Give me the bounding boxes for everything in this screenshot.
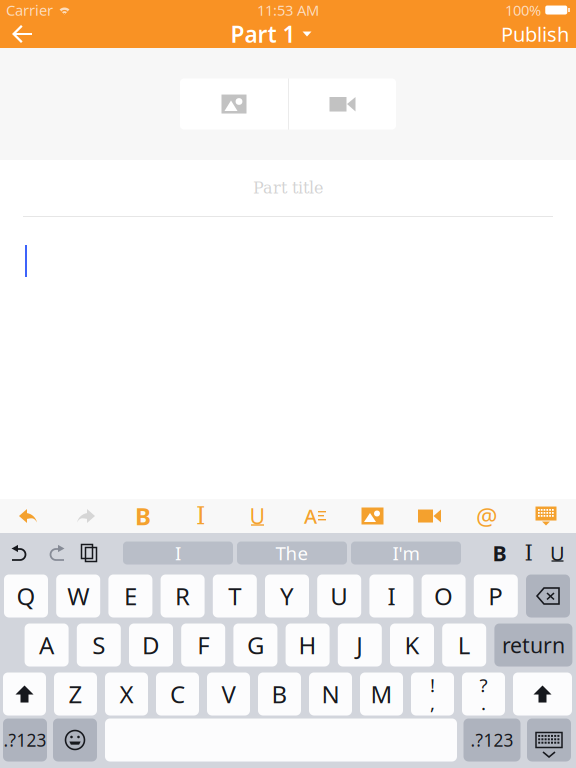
button[interactable]: X <box>105 672 148 715</box>
button[interactable]: H <box>286 623 330 666</box>
button[interactable]: A <box>25 623 69 666</box>
staticText: .?123 <box>470 728 513 751</box>
button[interactable]: Publish <box>498 20 572 48</box>
staticText: Z <box>68 678 82 710</box>
staticText: U <box>330 580 348 612</box>
button[interactable]: I <box>514 540 543 566</box>
staticText: Part 1 <box>230 19 295 49</box>
button[interactable]: Add video <box>289 78 396 129</box>
button[interactable]: V <box>207 672 250 715</box>
button[interactable]: U <box>543 540 572 566</box>
staticText: I <box>524 541 532 565</box>
staticText: 100% <box>505 0 541 20</box>
button[interactable]: Space <box>105 718 457 761</box>
staticText: U <box>550 540 565 566</box>
button[interactable]: J <box>338 623 382 666</box>
staticText: U <box>249 502 265 530</box>
button[interactable]: L <box>442 623 486 666</box>
staticText: M <box>370 678 392 710</box>
button[interactable]: I <box>123 541 233 564</box>
staticText: L <box>458 629 471 661</box>
button[interactable]: Undo <box>0 499 57 532</box>
button[interactable]: Redo <box>57 499 114 532</box>
button[interactable]: B <box>114 499 172 532</box>
button[interactable]: Part 1 <box>230 20 311 48</box>
button[interactable]: Y <box>265 574 309 617</box>
button[interactable]: M <box>360 672 403 715</box>
button[interactable]: U <box>317 574 361 617</box>
staticText: O <box>434 580 453 612</box>
button[interactable]: T <box>213 574 257 617</box>
staticText: J <box>356 629 363 661</box>
button[interactable]: Undo <box>4 540 38 566</box>
button[interactable]: U <box>229 499 286 532</box>
button[interactable]: ! <box>411 672 454 715</box>
button[interactable]: C <box>156 672 199 715</box>
staticText: H <box>299 629 317 661</box>
button[interactable]: B <box>258 672 301 715</box>
button[interactable]: Shift <box>513 672 572 715</box>
button[interactable]: Numbers <box>3 718 47 761</box>
staticText: T <box>228 580 241 612</box>
staticText: ! <box>430 673 435 697</box>
button[interactable]: F <box>181 623 225 666</box>
button[interactable]: Delete <box>526 574 570 617</box>
button[interactable]: Hide keyboard <box>527 718 571 761</box>
staticText: E <box>124 580 137 612</box>
button[interactable]: ? <box>462 672 505 715</box>
staticText: return <box>502 631 565 659</box>
button[interactable]: K <box>390 623 434 666</box>
staticText: ? <box>479 673 487 697</box>
button[interactable]: Insert video <box>401 499 458 532</box>
button[interactable]: B <box>485 540 514 566</box>
staticText: P <box>488 580 503 612</box>
staticText: F <box>197 629 209 661</box>
button[interactable]: Insert image <box>344 499 401 532</box>
button[interactable]: O <box>422 574 466 617</box>
button[interactable]: Q <box>4 574 48 617</box>
button[interactable]: I'm <box>351 541 461 564</box>
staticText: I'm <box>392 541 419 565</box>
staticText: S <box>92 629 105 661</box>
button[interactable]: R <box>161 574 205 617</box>
button[interactable]: G <box>233 623 277 666</box>
staticText: . <box>481 691 486 715</box>
button[interactable]: The <box>237 541 347 564</box>
staticText: 11:53 AM <box>257 0 319 20</box>
button[interactable]: Back <box>0 20 44 48</box>
staticText: .?123 <box>3 728 46 751</box>
button[interactable]: @ <box>458 499 516 532</box>
staticText: A <box>39 629 54 661</box>
staticText: N <box>321 678 339 710</box>
button[interactable]: S <box>77 623 121 666</box>
staticText: C <box>170 678 185 710</box>
button[interactable]: P <box>474 574 518 617</box>
staticText: I <box>175 541 181 565</box>
staticText: D <box>142 629 160 661</box>
staticText: @ <box>476 500 498 532</box>
button[interactable]: Numbers <box>463 718 520 761</box>
staticText: G <box>247 629 264 661</box>
button[interactable]: Add photo <box>180 78 288 129</box>
button[interactable]: Shift <box>3 672 46 715</box>
staticText: Q <box>16 580 35 612</box>
button[interactable]: Emoji <box>53 718 97 761</box>
button[interactable]: Z <box>54 672 97 715</box>
button[interactable]: N <box>309 672 352 715</box>
button[interactable]: Paste <box>72 540 106 566</box>
staticText: K <box>404 629 419 661</box>
button[interactable]: I <box>369 574 413 617</box>
staticText: A <box>304 503 317 529</box>
button[interactable]: Hide keyboard <box>516 499 576 532</box>
staticText: Y <box>280 580 294 612</box>
button[interactable]: I <box>172 499 229 532</box>
button[interactable]: Paragraph style <box>286 499 344 532</box>
staticText: R <box>175 580 190 612</box>
button[interactable]: W <box>56 574 100 617</box>
staticText: B <box>492 539 506 567</box>
button[interactable]: Return <box>494 623 572 666</box>
button[interactable]: D <box>129 623 173 666</box>
button[interactable]: Redo <box>38 540 72 566</box>
button[interactable]: E <box>108 574 152 617</box>
staticText: Publish <box>501 21 569 47</box>
